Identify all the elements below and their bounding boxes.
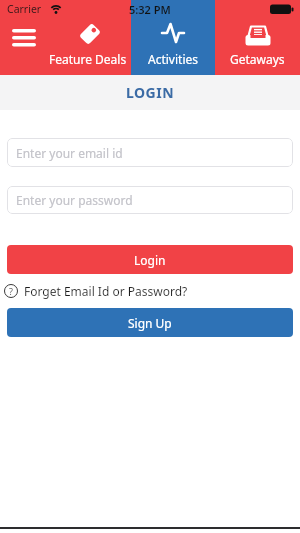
staticText: Getaways [230, 51, 285, 67]
button[interactable]: Feature Deals [44, 0, 131, 75]
button[interactable] [10, 28, 38, 50]
button[interactable]: Login [7, 245, 293, 274]
staticText: Carrier [7, 2, 42, 16]
staticText: Forget Email Id or Password? [24, 283, 188, 299]
staticText: Sign Up [128, 315, 172, 331]
button[interactable]: Getaways [215, 0, 300, 75]
staticText: 5:32 PM [129, 2, 171, 17]
staticText: ? [9, 285, 13, 297]
button[interactable]: Activities [131, 0, 215, 75]
staticText: Feature Deals [49, 51, 127, 67]
staticText: Enter your email id [16, 145, 123, 161]
staticText: LOGIN [126, 83, 175, 102]
staticText: Login [134, 252, 166, 268]
button[interactable]: ? [4, 283, 188, 299]
button[interactable]: Enter your password [7, 186, 293, 214]
button[interactable]: Sign Up [7, 308, 293, 337]
staticText: Activities [148, 51, 198, 67]
button[interactable]: Enter your email id [7, 138, 293, 167]
staticText: Enter your password [16, 192, 133, 208]
